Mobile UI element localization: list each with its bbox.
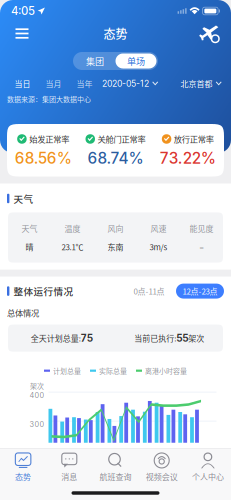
staticText: 放行正常率 xyxy=(174,133,214,145)
staticText: 晴 xyxy=(25,241,33,253)
button[interactable]: 个人中心 xyxy=(185,449,231,486)
staticText: 68.56% xyxy=(15,149,72,168)
staticText: 东南 xyxy=(107,241,123,253)
staticText: 天气 xyxy=(13,191,33,205)
staticText: 12点-23点 xyxy=(182,285,217,297)
staticText: 当前已执行: xyxy=(134,332,176,344)
button[interactable]: 航班查询 xyxy=(92,449,139,486)
staticText: 55 xyxy=(176,332,188,344)
button[interactable]: 当月 xyxy=(38,76,69,90)
staticText: 4:05 xyxy=(11,4,35,18)
staticText: 0点-11点 xyxy=(133,285,164,297)
staticText: 架次 xyxy=(30,381,44,391)
button[interactable]: 当年 xyxy=(69,76,100,90)
staticText: 23.1℃ xyxy=(61,241,83,253)
staticText: 400 xyxy=(29,391,44,400)
staticText: 单场 xyxy=(127,54,145,67)
staticText: 能见度 xyxy=(189,222,213,234)
staticText: 架次 xyxy=(188,332,204,344)
staticText: 消息 xyxy=(61,471,77,482)
button[interactable]: 菜单 xyxy=(6,21,38,45)
button[interactable]: 集团 xyxy=(74,53,115,68)
staticText: 数据来源：集团大数据中心 xyxy=(7,94,91,104)
button[interactable]: 0点-11点 xyxy=(126,284,172,299)
staticText: – xyxy=(199,241,203,253)
staticText: 整体运行情况 xyxy=(13,284,73,298)
staticText: 实际总量 xyxy=(99,366,127,376)
staticText: 68.74% xyxy=(87,149,143,168)
staticText: 计划总量 xyxy=(53,366,81,376)
staticText: 关舱门正常率 xyxy=(97,133,145,145)
staticText: 离港小时容量 xyxy=(145,366,187,376)
staticText: 风向 xyxy=(107,222,123,234)
staticText: 航班查询 xyxy=(99,471,131,482)
button[interactable]: 北京首都 xyxy=(178,76,224,90)
button[interactable]: 单场 xyxy=(115,53,156,68)
staticText: 始发正常率 xyxy=(29,133,69,145)
staticText: 全天计划总量: xyxy=(31,332,81,344)
button[interactable]: 视频会议 xyxy=(139,449,185,486)
staticText: 总体情况 xyxy=(7,307,39,319)
button[interactable]: 消息 xyxy=(46,449,92,486)
staticText: 当月 xyxy=(45,78,61,89)
staticText: 态势 xyxy=(15,471,31,482)
staticText: 集团 xyxy=(86,54,104,67)
staticText: 个人中心 xyxy=(192,471,224,482)
staticText: 风速 xyxy=(150,222,166,234)
staticText: 75 xyxy=(81,332,93,344)
staticText: 3m/s xyxy=(149,241,167,253)
staticText: 2020-05-12 xyxy=(102,78,149,89)
button[interactable]: 2020-05-12 xyxy=(100,76,160,90)
staticText: 天气 xyxy=(21,222,37,234)
staticText: 当日 xyxy=(14,78,30,89)
staticText: 北京首都 xyxy=(180,78,212,89)
staticText: 视频会议 xyxy=(146,471,178,482)
button[interactable]: 当日 xyxy=(7,76,38,90)
staticText: 态势 xyxy=(103,25,127,42)
staticText: 73.22% xyxy=(160,149,216,168)
button[interactable]: 航班查询 xyxy=(193,21,225,45)
staticText: 温度 xyxy=(64,222,80,234)
staticText: 当年 xyxy=(76,78,92,89)
staticText: 300 xyxy=(29,420,44,429)
button[interactable]: 态势 xyxy=(0,449,46,486)
button[interactable]: 12点-23点 xyxy=(176,284,224,299)
